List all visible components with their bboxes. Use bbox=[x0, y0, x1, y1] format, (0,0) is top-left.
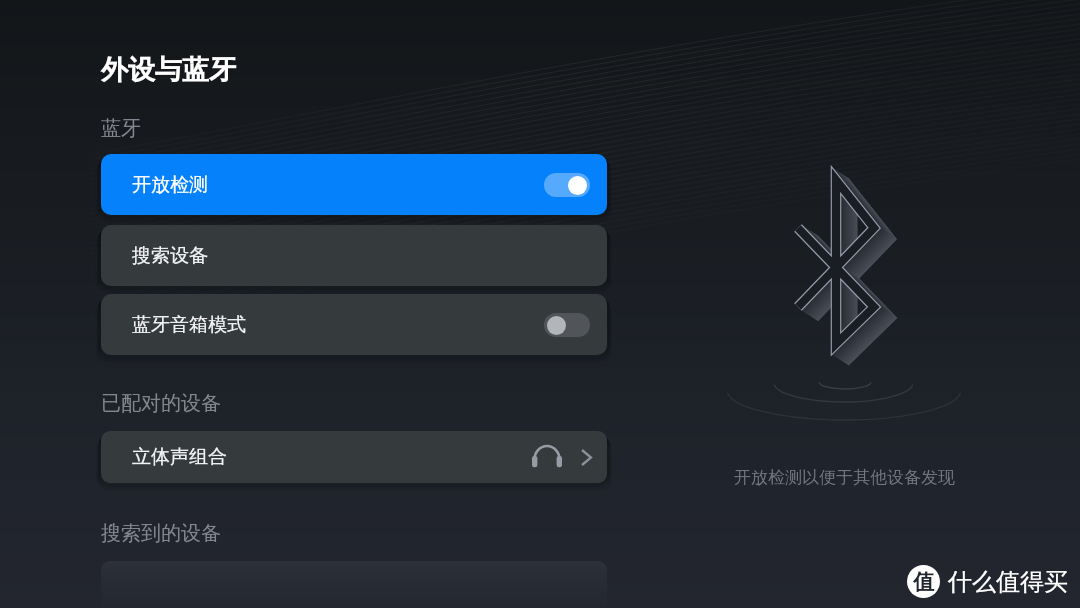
button[interactable] bbox=[101, 561, 607, 608]
staticText: 开放检测以便于其他设备发现 bbox=[734, 467, 955, 488]
button[interactable]: 搜索设备 bbox=[101, 225, 607, 286]
staticText: 开放检测 bbox=[132, 173, 208, 197]
staticText: 蓝牙音箱模式 bbox=[132, 313, 246, 337]
staticText: 已配对的设备 bbox=[101, 391, 221, 416]
button[interactable]: 开放检测 bbox=[101, 154, 607, 215]
staticText: 搜索设备 bbox=[132, 244, 208, 268]
staticText: 蓝牙 bbox=[101, 116, 141, 141]
staticText: 外设与蓝牙 bbox=[101, 53, 236, 87]
button[interactable]: 蓝牙音箱模式 bbox=[101, 294, 607, 355]
other: Open device details bbox=[581, 449, 592, 466]
button[interactable]: Bluetooth speaker mode toggle, off bbox=[544, 313, 590, 337]
staticText: 什么值得买 bbox=[948, 567, 1068, 597]
staticText: 搜索到的设备 bbox=[101, 521, 221, 546]
staticText: 立体声组合 bbox=[132, 445, 227, 469]
button[interactable]: 立体声组合 bbox=[101, 431, 607, 483]
staticText: 值 bbox=[913, 569, 934, 595]
button[interactable]: Open detection toggle, on bbox=[544, 173, 590, 197]
other: Headphones bbox=[532, 444, 562, 471]
